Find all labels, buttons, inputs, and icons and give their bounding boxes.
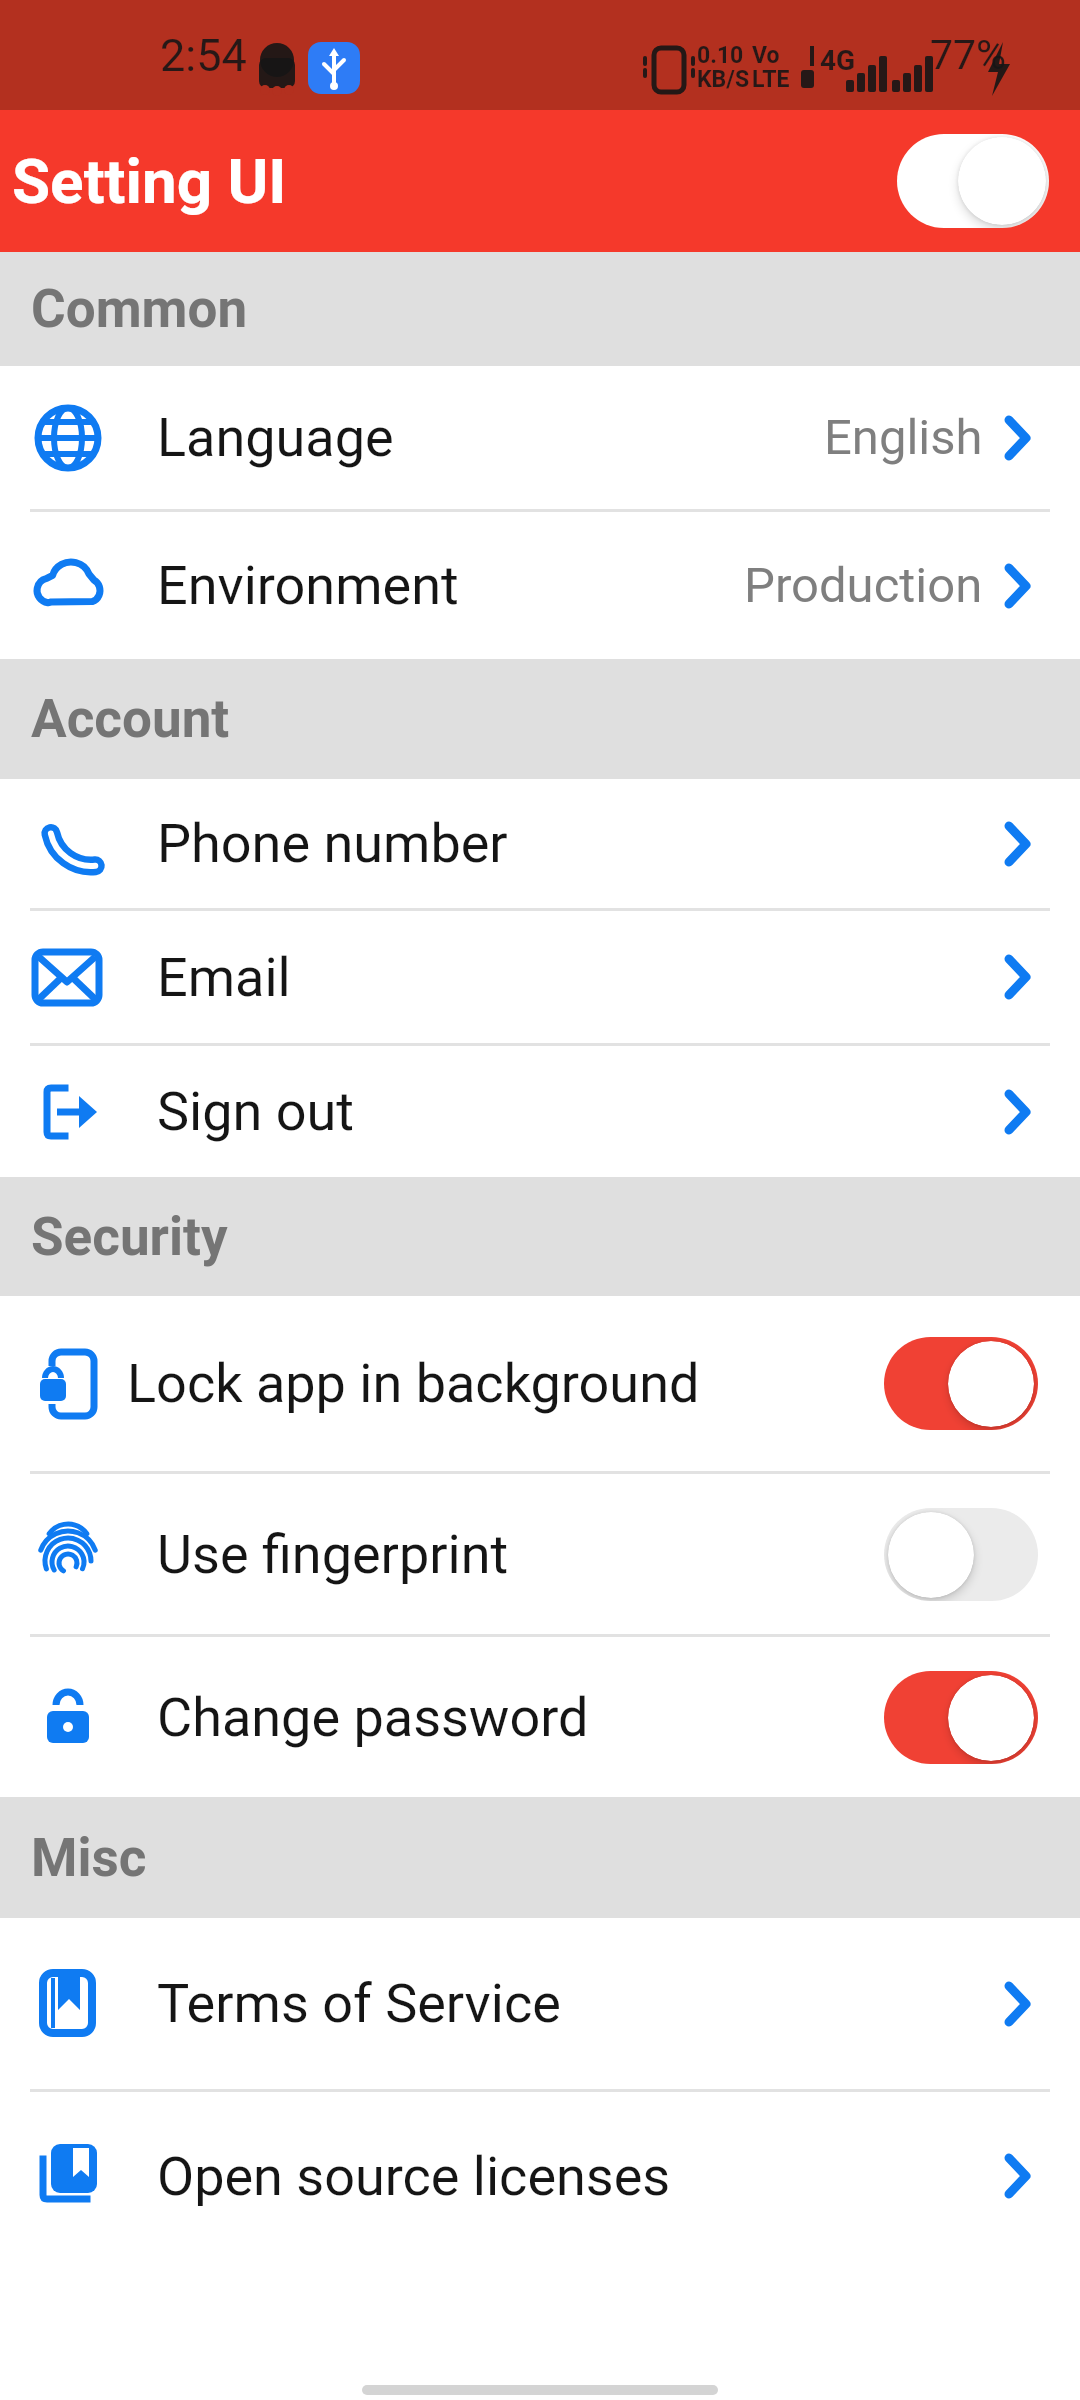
staticText: 0.10 xyxy=(697,42,744,69)
button[interactable]: Language xyxy=(0,366,1080,509)
staticText: Phone number xyxy=(157,812,508,875)
button[interactable] xyxy=(884,1337,1038,1430)
staticText: 2:54 xyxy=(160,29,247,82)
staticText: Vo xyxy=(752,42,780,69)
button[interactable] xyxy=(884,1671,1038,1764)
staticText: Security xyxy=(31,1206,228,1268)
button[interactable]: Email xyxy=(0,911,1080,1043)
staticText: Common xyxy=(31,278,248,340)
staticText: Use fingerprint xyxy=(157,1523,509,1586)
staticText: Account xyxy=(31,688,230,750)
button[interactable]: Environment xyxy=(0,512,1080,659)
staticText: KB/S xyxy=(697,66,750,93)
staticText: Lock app in background xyxy=(127,1352,700,1415)
button[interactable]: Phone number xyxy=(0,779,1080,908)
staticText: Language xyxy=(157,406,394,469)
staticText: Production xyxy=(744,557,983,614)
staticText: Change password xyxy=(157,1686,589,1749)
staticText: Sign out xyxy=(157,1080,354,1143)
staticText: Environment xyxy=(157,554,459,617)
button[interactable] xyxy=(884,1508,1038,1601)
staticText: Open source licenses xyxy=(157,2145,671,2208)
button[interactable]: Change password xyxy=(0,1637,1080,1797)
staticText: Misc xyxy=(31,1827,147,1889)
staticText: English xyxy=(824,409,983,466)
staticText: Email xyxy=(157,946,291,1009)
staticText: 4G xyxy=(820,44,856,77)
button[interactable] xyxy=(897,134,1049,228)
staticText: 77% xyxy=(930,31,1007,79)
button[interactable]: Use fingerprint xyxy=(0,1474,1080,1634)
staticText: Setting UI xyxy=(12,145,287,218)
button[interactable]: Lock app in background xyxy=(0,1296,1080,1471)
staticText: Terms of Service xyxy=(157,1972,561,2035)
staticText: LTE xyxy=(752,66,790,93)
button[interactable]: Terms of Service xyxy=(0,1918,1080,2089)
button[interactable]: Open source licenses xyxy=(0,2092,1080,2260)
button[interactable]: Sign out xyxy=(0,1046,1080,1177)
